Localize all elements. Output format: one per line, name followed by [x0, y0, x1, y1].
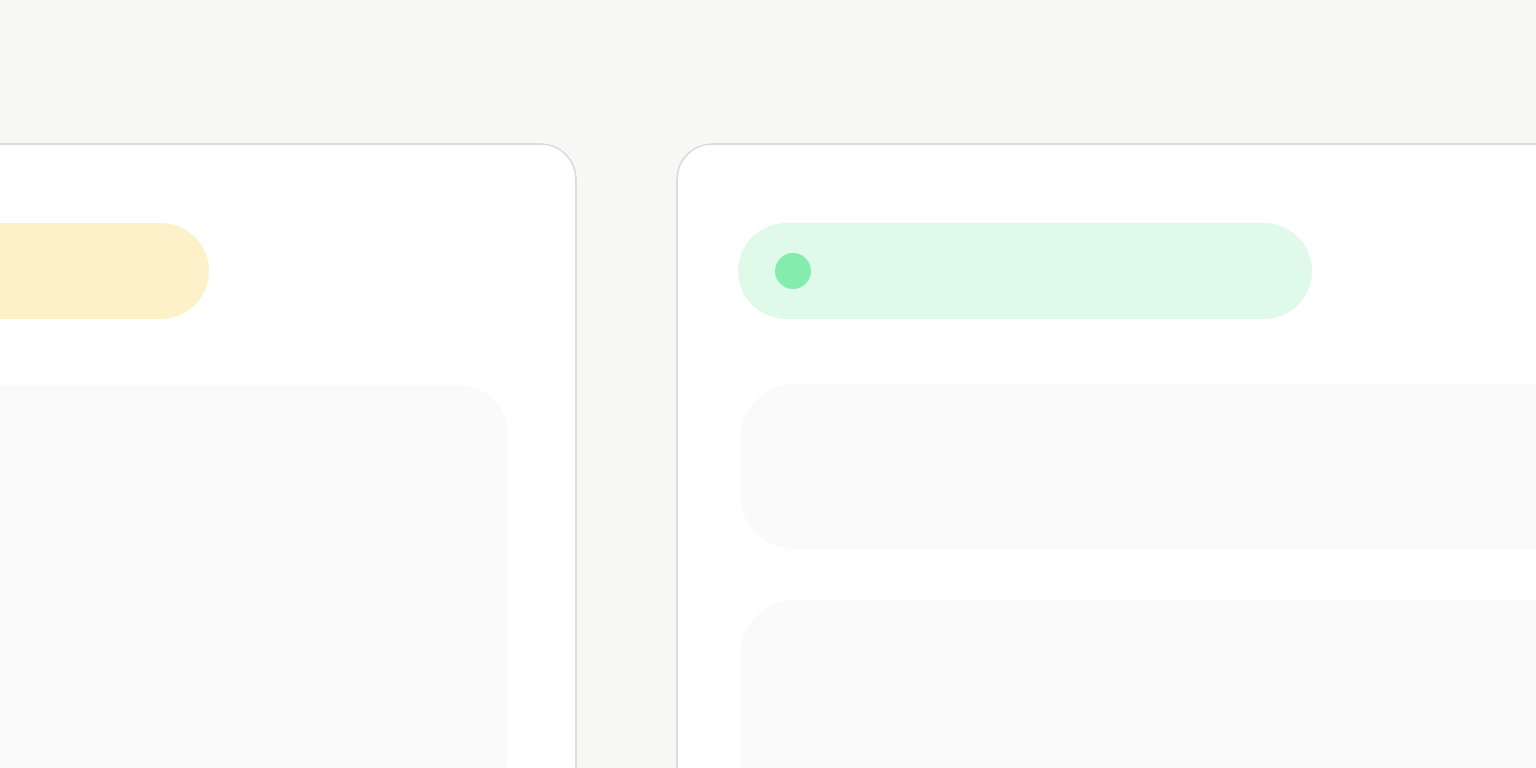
- button[interactable]: Card: [676, 143, 1536, 768]
- button[interactable]: Pending status: [0, 223, 209, 319]
- button[interactable]: Completed status: [738, 223, 1312, 319]
- button[interactable]: Card: [0, 143, 577, 768]
